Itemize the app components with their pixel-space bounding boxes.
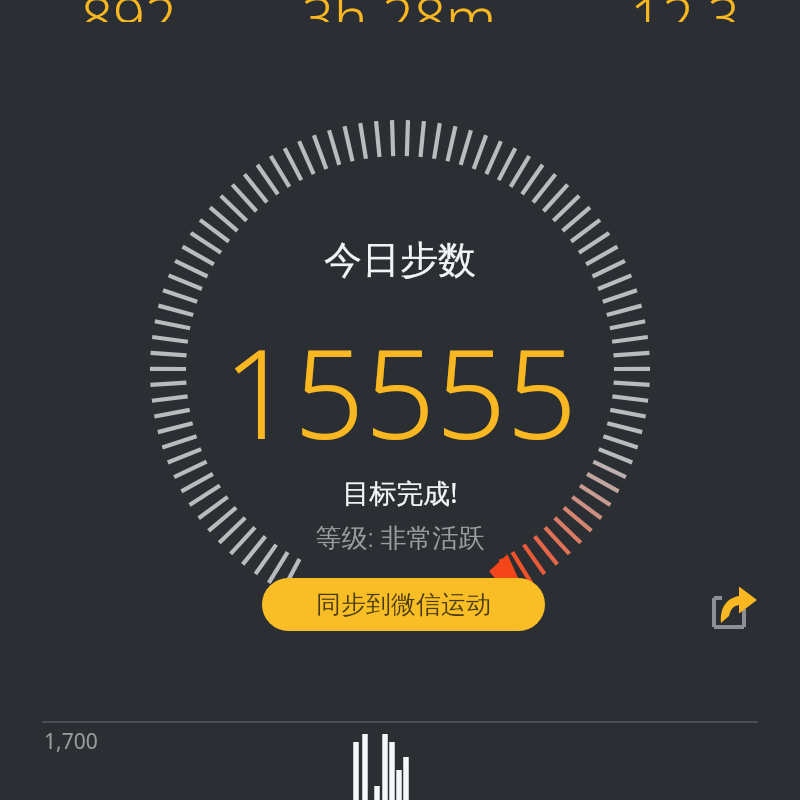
staticText: 892 (81, 0, 177, 22)
button[interactable]: 3h 28m (279, 0, 519, 22)
staticText: 等级: 非常活跃 (0, 519, 800, 555)
staticText: 15555 (0, 306, 800, 475)
button[interactable]: Share (704, 580, 764, 640)
staticText: 同步到微信运动 (316, 589, 491, 620)
staticText: 12.3 (630, 0, 740, 22)
staticText: 3h 28m (302, 0, 496, 22)
button[interactable]: 同步到微信运动 (262, 578, 545, 631)
staticText: 1,700 (44, 727, 98, 756)
button[interactable]: 892 (9, 0, 249, 22)
button[interactable]: 12.3 (565, 0, 800, 22)
staticText: 目标完成! (0, 474, 800, 511)
staticText: 今日步数 (0, 236, 800, 284)
